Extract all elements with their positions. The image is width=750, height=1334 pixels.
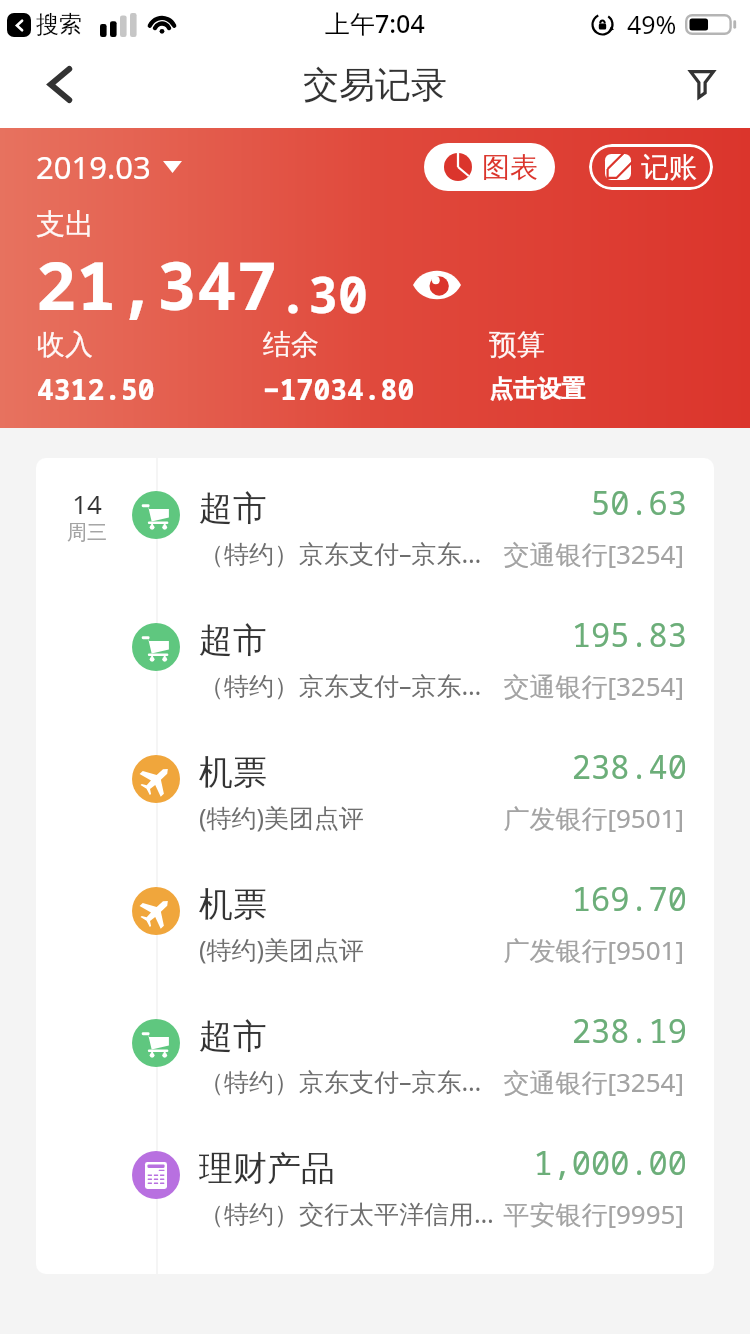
button[interactable]: 机票 (36, 854, 714, 986)
staticText: 平安银行[9995] (484, 1196, 684, 1232)
staticText: 238.19 (287, 1009, 687, 1053)
staticText: 超市 (199, 619, 267, 662)
button[interactable]: Toggle amount visibility (409, 257, 465, 313)
staticText: 理财产品 (199, 1147, 335, 1190)
staticText: 169.70 (287, 877, 687, 921)
staticText: .30 (278, 260, 368, 328)
staticText: (特约)美团点评 (199, 932, 519, 966)
staticText: 1,000.00 (287, 1141, 687, 1185)
staticText: (特约)美团点评 (199, 800, 519, 834)
button[interactable]: Back (31, 55, 89, 113)
staticText: 交易记录 (303, 62, 447, 107)
staticText: 收入 (37, 327, 93, 362)
staticText: 交通银行[3254] (484, 1064, 684, 1100)
staticText: 广发银行[9501] (484, 932, 684, 968)
button[interactable]: 超市 (36, 986, 714, 1118)
staticText: 交通银行[3254] (484, 536, 684, 572)
button[interactable]: 超市 (36, 458, 714, 590)
staticText: 广发银行[9501] (484, 800, 684, 836)
button[interactable]: 理财产品 (36, 1118, 714, 1250)
staticText: 预算 (489, 327, 545, 362)
staticText: （特约）京东支付–京东… (199, 536, 519, 570)
staticText: 4312.50 (37, 370, 155, 408)
staticText: 超市 (199, 1015, 267, 1058)
staticText: 195.83 (287, 613, 687, 657)
staticText: −17034.80 (263, 370, 415, 408)
staticText: 49% (627, 7, 677, 41)
staticText: 50.63 (287, 481, 687, 525)
staticText: 交通银行[3254] (484, 668, 684, 704)
staticText: 图表 (482, 150, 538, 185)
staticText: 支出 (36, 206, 94, 243)
button[interactable]: 超市 (36, 590, 714, 722)
staticText: 238.40 (287, 745, 687, 789)
staticText: （特约）京东支付–京东… (199, 668, 519, 702)
staticText: 机票 (199, 883, 267, 926)
button[interactable]: 图表 (424, 143, 555, 191)
staticText: 14 (62, 486, 112, 521)
staticText: （特约）交行太平洋信用… (199, 1196, 519, 1230)
staticText: 结余 (263, 327, 319, 362)
staticText: 搜索 (36, 10, 82, 39)
staticText: 21,347 (36, 238, 278, 329)
button[interactable]: 机票 (36, 722, 714, 854)
staticText: 点击设置 (489, 374, 585, 404)
staticText: （特约）京东支付–京东… (199, 1064, 519, 1098)
staticText: 超市 (199, 487, 267, 530)
staticText: 上午7:04 (325, 6, 425, 40)
staticText: 周三 (62, 520, 112, 545)
staticText: 记账 (641, 150, 697, 185)
button[interactable]: 2019.03 (34, 144, 184, 190)
button[interactable]: Filter (673, 55, 731, 113)
staticText: 2019.03 (36, 146, 151, 188)
button[interactable]: 记账 (589, 144, 713, 190)
staticText: 机票 (199, 751, 267, 794)
